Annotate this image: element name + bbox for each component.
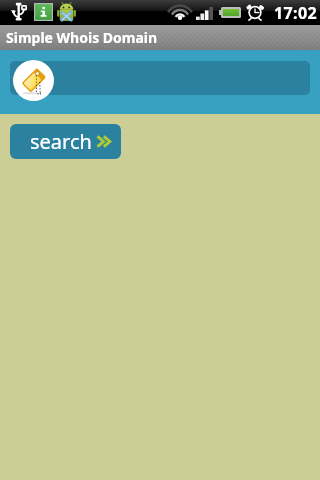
staticText: Simple Whois Domain <box>6 28 158 47</box>
staticText: search <box>30 128 92 155</box>
button[interactable]: search <box>10 124 121 159</box>
button[interactable] <box>10 61 310 95</box>
staticText: 17:02 <box>274 2 318 24</box>
